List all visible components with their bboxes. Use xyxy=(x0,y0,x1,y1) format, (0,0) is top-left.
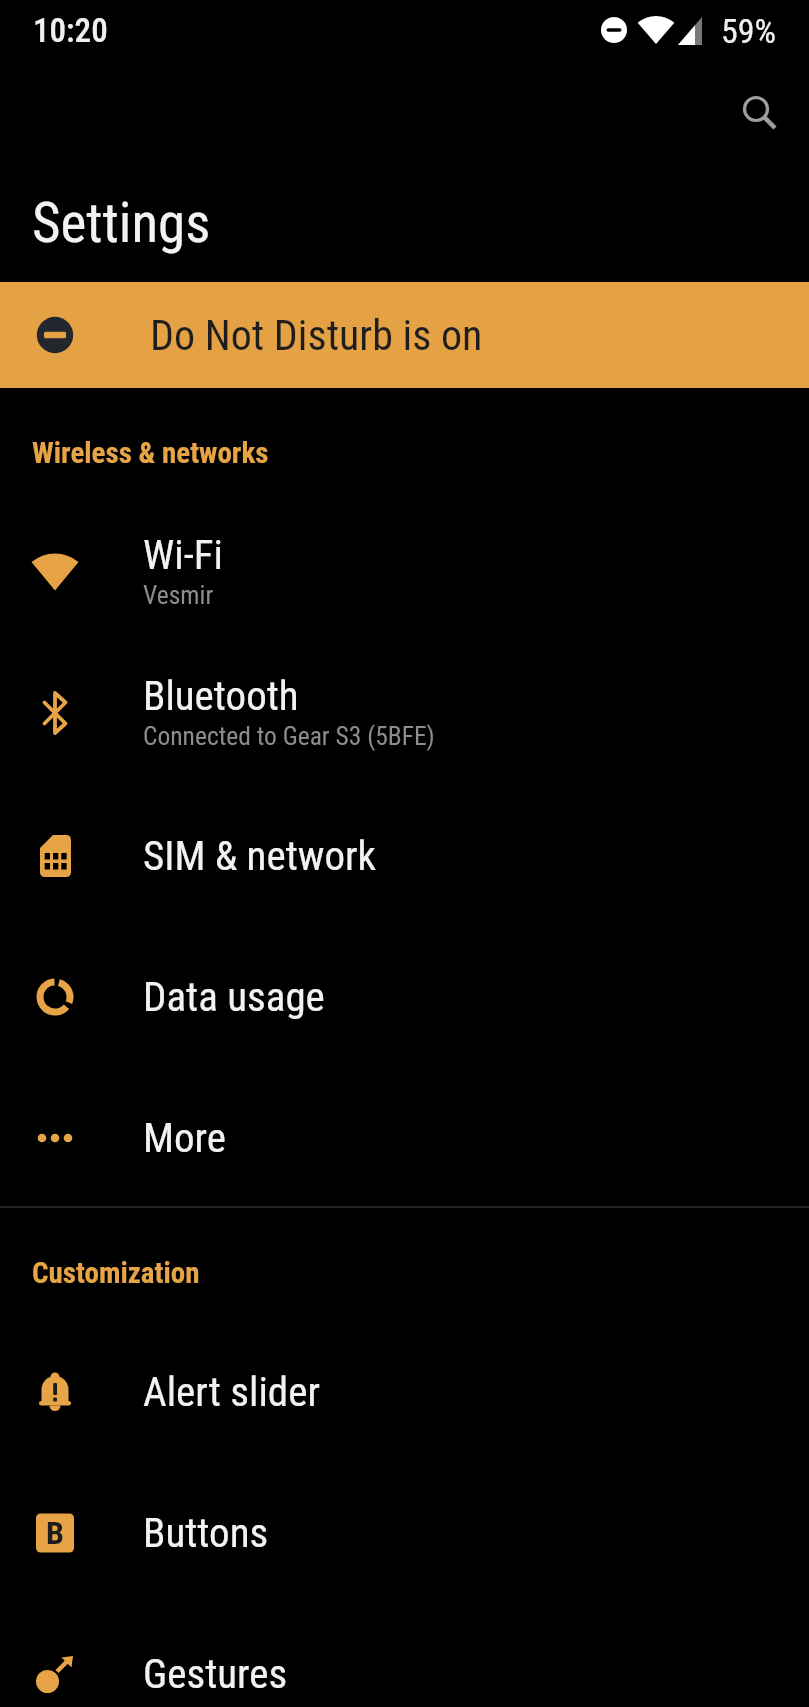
staticText: Settings xyxy=(32,191,211,255)
staticText: Vesmir xyxy=(143,580,214,610)
staticText: SIM & network xyxy=(143,832,377,880)
staticText: Do Not Disturb is on xyxy=(150,311,483,360)
button[interactable]: Do Not Disturb is on xyxy=(0,282,809,388)
staticText: 59% xyxy=(721,11,777,51)
staticText: B xyxy=(46,1514,64,1552)
button[interactable]: Bluetooth xyxy=(0,644,809,785)
button[interactable]: More xyxy=(0,1067,809,1208)
staticText: Wi-Fi xyxy=(143,531,223,579)
staticText: Data usage xyxy=(143,973,325,1021)
staticText: Gestures xyxy=(143,1650,288,1698)
staticText: Connected to Gear S3 (5BFE) xyxy=(143,721,435,751)
staticText: Customization xyxy=(32,1256,200,1290)
button[interactable]: Gestures xyxy=(0,1603,809,1707)
button[interactable]: Data usage xyxy=(0,926,809,1067)
staticText: Alert slider xyxy=(143,1368,320,1416)
staticText: Bluetooth xyxy=(143,672,299,720)
button[interactable]: Wi-Fi xyxy=(0,503,809,644)
staticText: Wireless & networks xyxy=(32,436,269,470)
staticText: Buttons xyxy=(143,1509,269,1557)
staticText: More xyxy=(143,1114,226,1162)
staticText: 10:20 xyxy=(33,11,108,50)
button[interactable] xyxy=(732,85,780,133)
button[interactable]: B xyxy=(0,1462,809,1603)
button[interactable]: Alert slider xyxy=(0,1321,809,1462)
button[interactable]: SIM & network xyxy=(0,785,809,926)
